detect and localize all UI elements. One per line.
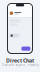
staticText: Direct Chat bbox=[6, 57, 34, 64]
staticText: Chat with anyone, instantly bbox=[1, 63, 38, 67]
